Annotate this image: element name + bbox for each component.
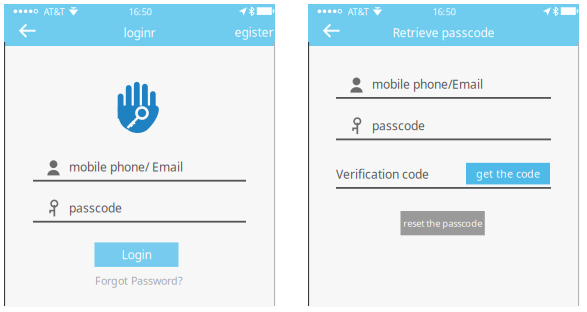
staticText: Forgot Password? bbox=[95, 273, 183, 288]
staticText: 16:50 bbox=[432, 5, 455, 18]
staticText: reset the passcode bbox=[403, 217, 482, 229]
staticText: AT&T bbox=[43, 5, 64, 18]
staticText: get the code bbox=[476, 166, 540, 181]
button[interactable]: Back bbox=[6, 19, 50, 46]
staticText: passcode bbox=[372, 117, 425, 133]
staticText: loginr bbox=[123, 24, 155, 40]
button[interactable]: Forgot Password? bbox=[95, 273, 183, 288]
staticText: Verification code bbox=[336, 166, 429, 182]
button[interactable]: Login bbox=[94, 242, 178, 267]
staticText: egister bbox=[234, 24, 273, 40]
staticText: passcode bbox=[69, 200, 122, 216]
button[interactable]: egister bbox=[234, 19, 278, 46]
button[interactable]: reset the passcode bbox=[400, 211, 485, 235]
staticText: 16:50 bbox=[128, 5, 151, 18]
staticText: AT&T bbox=[347, 5, 368, 18]
button[interactable]: Back bbox=[310, 19, 354, 46]
staticText: Retrieve passcode bbox=[392, 24, 494, 40]
button[interactable]: get the code bbox=[466, 163, 550, 184]
staticText: mobile phone/Email bbox=[372, 76, 483, 92]
staticText: Login bbox=[121, 247, 151, 263]
staticText: mobile phone/ Email bbox=[69, 159, 183, 175]
